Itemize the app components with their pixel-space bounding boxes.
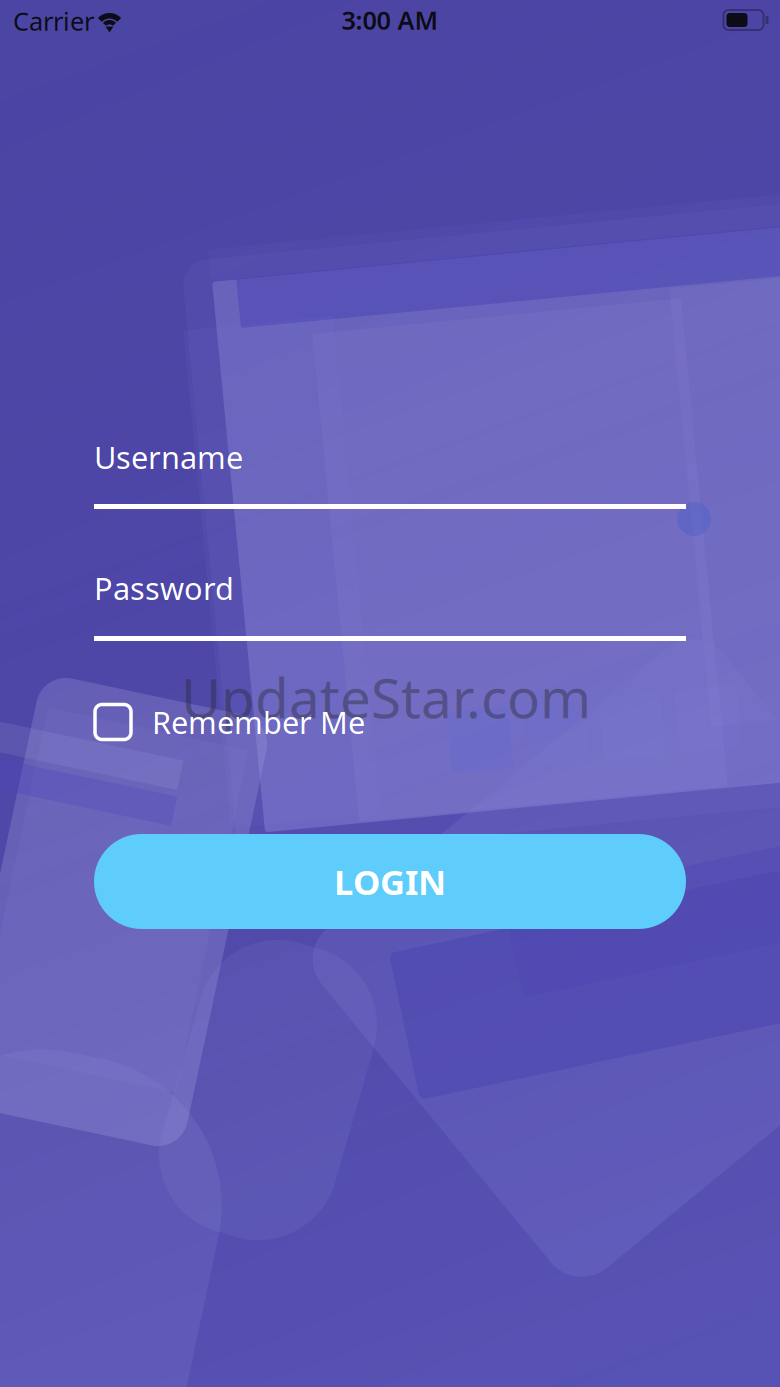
staticText: LOGIN	[334, 858, 446, 904]
staticText: UpdateStar.com	[181, 661, 591, 733]
button[interactable]: LOGIN	[0, 0, 780, 1387]
staticText: Remember Me	[152, 702, 365, 742]
staticText: Password	[94, 568, 234, 608]
staticText: Username	[94, 437, 243, 477]
staticText: Carrier	[13, 4, 94, 38]
button[interactable]: Remember Me	[0, 0, 780, 1387]
staticText: 3:00 AM	[341, 3, 438, 37]
